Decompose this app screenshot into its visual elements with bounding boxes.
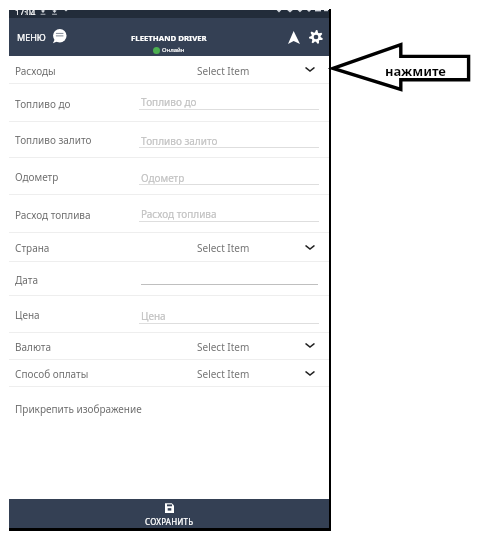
- button[interactable]: МЕНЮ: [17, 30, 51, 44]
- button[interactable]: Способ оплаты: [9, 360, 330, 387]
- staticText: Цена: [141, 309, 166, 323]
- button[interactable]: Топливо залито: [9, 121, 330, 158]
- button[interactable]: Расход топлива: [9, 195, 330, 233]
- staticText: СОХРАНИТЬ: [145, 516, 194, 527]
- staticText: Страна: [15, 241, 50, 255]
- button[interactable]: Валюта: [9, 332, 330, 360]
- staticText: МЕНЮ: [17, 31, 46, 43]
- staticText: Одометр: [141, 171, 185, 185]
- button[interactable]: Страна: [9, 233, 330, 262]
- staticText: Расходы: [15, 64, 56, 78]
- staticText: Топливо до: [15, 97, 71, 111]
- staticText: Способ оплаты: [15, 367, 89, 381]
- staticText: Валюта: [15, 340, 52, 354]
- button[interactable]: Расходы: [9, 56, 330, 84]
- staticText: Цена: [15, 308, 40, 322]
- staticText: Select Item: [197, 340, 250, 354]
- button[interactable]: Прикрепить изображение: [9, 389, 330, 429]
- button[interactable]: Settings: [309, 30, 323, 44]
- staticText: Прикрепить изображение: [15, 402, 142, 416]
- staticText: Select Item: [197, 64, 250, 78]
- staticText: Select Item: [197, 241, 250, 255]
- button[interactable]: Топливо до: [9, 84, 330, 122]
- staticText: Одометр: [15, 170, 59, 184]
- staticText: Топливо залито: [15, 133, 92, 147]
- button[interactable]: Messages: [52, 29, 67, 44]
- button[interactable]: Navigation: [288, 31, 300, 44]
- staticText: Онлайн: [162, 46, 185, 54]
- staticText: нажмите: [385, 62, 446, 80]
- button[interactable]: СОХРАНИТЬ: [9, 499, 330, 528]
- staticText: Расход топлива: [15, 208, 91, 222]
- staticText: 17:04: [15, 10, 36, 15]
- staticText: FLEETHAND DRIVER: [131, 33, 207, 44]
- button[interactable]: Дата: [9, 262, 330, 296]
- staticText: Select Item: [197, 367, 250, 381]
- staticText: Топливо до: [141, 95, 197, 109]
- button[interactable]: Одометр: [9, 158, 330, 195]
- staticText: Расход топлива: [141, 207, 217, 221]
- staticText: Дата: [15, 273, 38, 287]
- staticText: Топливо залито: [141, 134, 218, 148]
- button[interactable]: Цена: [9, 296, 330, 333]
